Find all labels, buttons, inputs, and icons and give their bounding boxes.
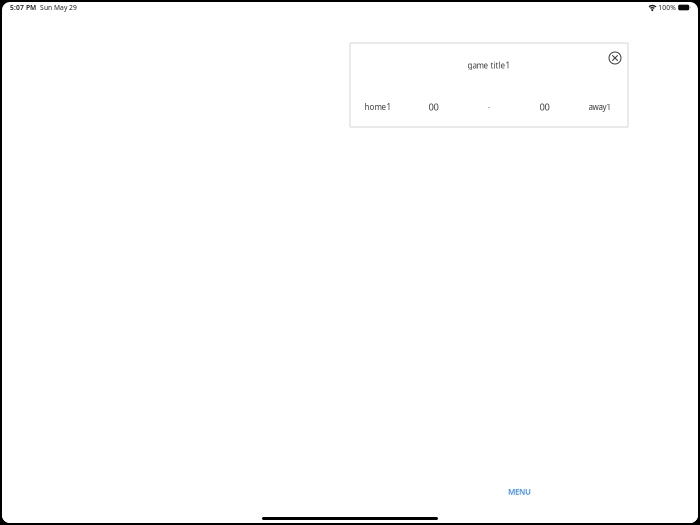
staticText: - (487, 101, 490, 113)
staticText: 5:07 PM (10, 3, 36, 12)
staticText: away1 (588, 101, 611, 112)
staticText: MENU (508, 486, 531, 497)
staticText: 100% (658, 3, 676, 12)
button[interactable]: MENU (508, 486, 531, 497)
staticText: 00 (428, 101, 438, 113)
staticText: game title1 (467, 60, 510, 71)
button[interactable]: Close (608, 51, 622, 65)
staticText: home1 (364, 101, 391, 112)
staticText: Sun May 29 (40, 3, 77, 12)
staticText: 00 (539, 101, 549, 113)
